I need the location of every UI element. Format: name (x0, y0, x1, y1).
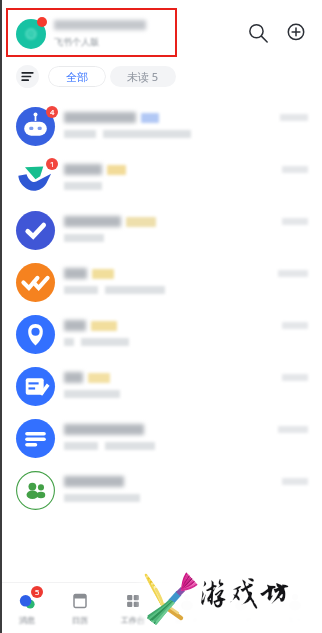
staticText: 飞书个人版 (54, 36, 99, 47)
staticText: 全部 (66, 70, 88, 84)
button[interactable]: 4 (0, 100, 322, 152)
button[interactable]: 云文档 (214, 583, 268, 633)
button[interactable]: 工作台 (106, 583, 160, 633)
button[interactable] (0, 412, 322, 464)
button[interactable]: 全部 (48, 66, 106, 87)
staticText: 5 (35, 587, 40, 597)
staticText: 工作台 (121, 615, 145, 625)
button[interactable]: 通讯录 (160, 583, 214, 633)
staticText: Q (28, 29, 34, 39)
button[interactable]: Profile (15, 18, 46, 49)
button[interactable]: 未读 5 (110, 66, 176, 87)
staticText: 游戏坊 (198, 577, 290, 611)
button[interactable]: Add (283, 20, 309, 46)
button[interactable]: Search (245, 20, 271, 46)
button[interactable]: 5 (0, 583, 53, 633)
button[interactable] (0, 256, 322, 308)
staticText: 1 (50, 159, 55, 169)
staticText: 消息 (19, 615, 35, 625)
staticText: 未读 5 (127, 69, 159, 84)
button[interactable]: 日历 (53, 583, 106, 633)
staticText: 通讯录 (175, 615, 199, 625)
staticText: 4 (50, 107, 55, 117)
button[interactable]: 1 (0, 152, 322, 204)
button[interactable]: Filter (16, 65, 39, 88)
button[interactable] (0, 360, 322, 412)
button[interactable] (0, 204, 322, 256)
staticText: 日历 (72, 615, 88, 625)
button[interactable]: 我的 (268, 583, 322, 633)
button[interactable] (0, 308, 322, 360)
button[interactable] (0, 464, 322, 516)
